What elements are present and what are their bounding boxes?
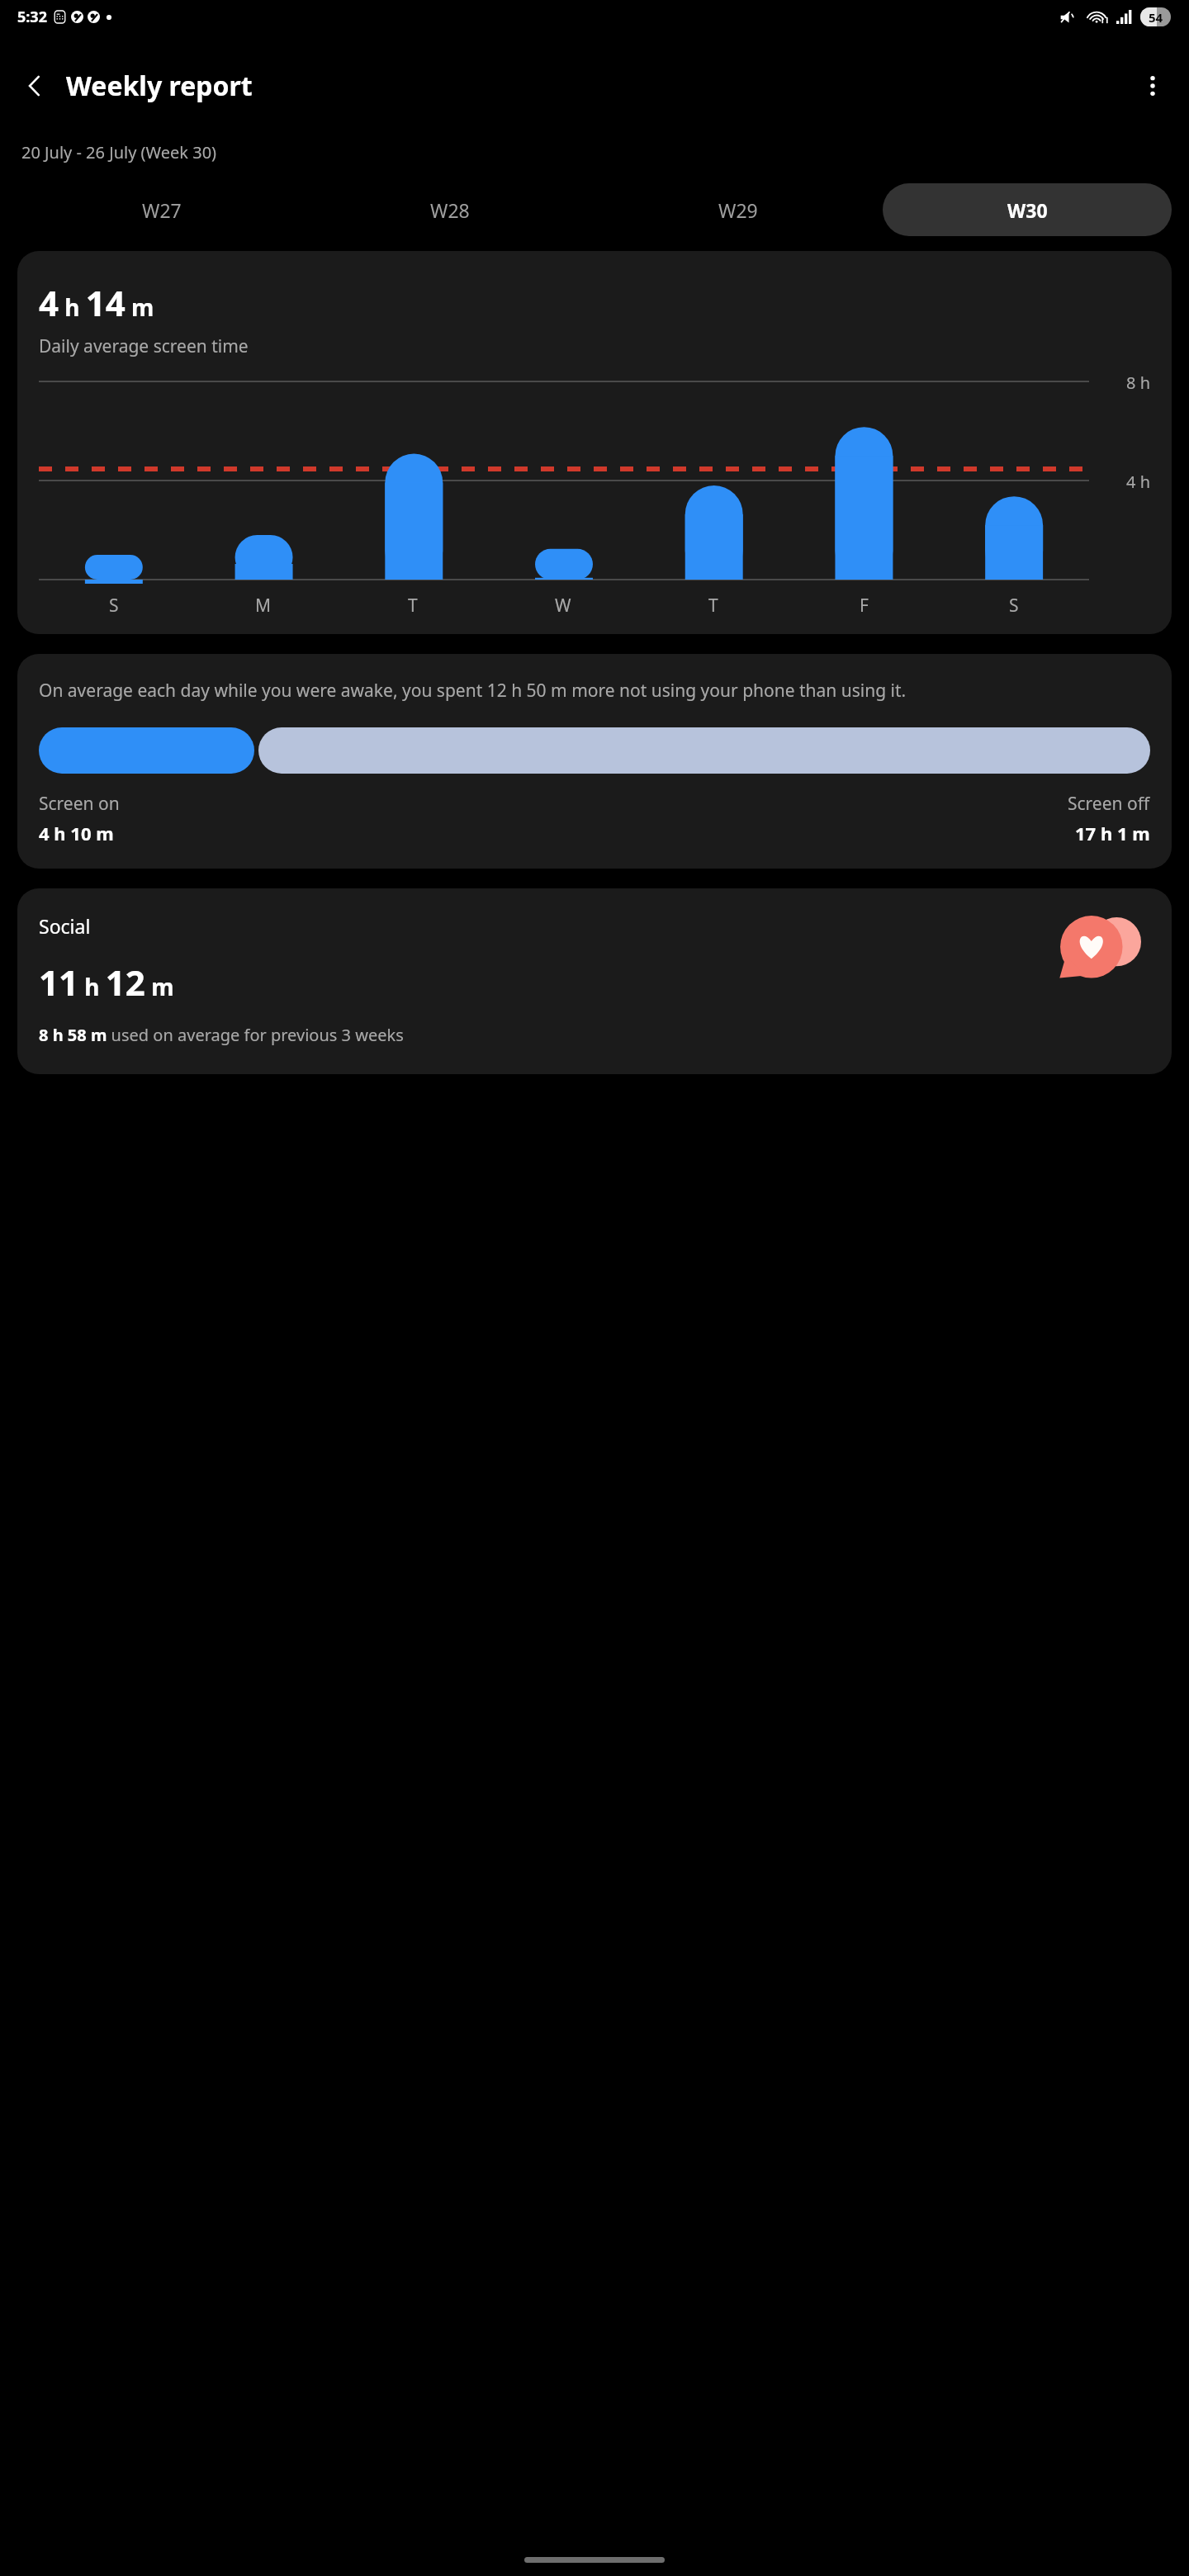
button[interactable]: Back: [12, 63, 58, 109]
staticText: Weekly report: [66, 68, 253, 104]
staticText: W27: [142, 197, 182, 223]
staticText: W: [555, 594, 571, 618]
button[interactable]: Social: [17, 888, 1172, 1074]
staticText: 54: [1149, 9, 1163, 26]
staticText: 4 h: [1126, 471, 1150, 493]
staticText: 11 h 12 m: [39, 959, 174, 1006]
staticText: W30: [1007, 197, 1048, 223]
staticText: 4 h 10 m: [39, 821, 114, 845]
staticText: S: [109, 594, 119, 618]
staticText: W29: [718, 197, 758, 223]
staticText: T: [408, 594, 418, 618]
staticText: 4 h 14 m: [39, 279, 154, 326]
staticText: 8 h: [1126, 372, 1150, 394]
staticText: T: [708, 594, 718, 618]
staticText: F: [860, 594, 869, 618]
staticText: 8 h 58 m used on average for previous 3 …: [39, 1024, 404, 1046]
staticText: On average each day while you were awake…: [39, 679, 907, 703]
button[interactable]: W28: [306, 183, 594, 236]
button[interactable]: W27: [17, 183, 306, 236]
button[interactable]: 4 h 14 m: [17, 251, 1172, 634]
button[interactable]: W30: [883, 183, 1172, 236]
staticText: Daily average screen time: [39, 334, 249, 358]
staticText: 17 h 1 m: [1075, 821, 1150, 845]
staticText: Screen on: [39, 792, 120, 816]
staticText: Social: [39, 913, 91, 939]
staticText: Screen off: [1068, 792, 1150, 816]
staticText: M: [255, 594, 272, 618]
staticText: S: [1009, 594, 1019, 618]
staticText: W28: [430, 197, 470, 223]
staticText: 20 July - 26 July (Week 30): [21, 141, 217, 163]
button[interactable]: On average each day while you were awake…: [17, 654, 1172, 869]
staticText: 5:32: [17, 7, 47, 27]
button[interactable]: More options: [1130, 63, 1176, 109]
button[interactable]: W29: [594, 183, 883, 236]
